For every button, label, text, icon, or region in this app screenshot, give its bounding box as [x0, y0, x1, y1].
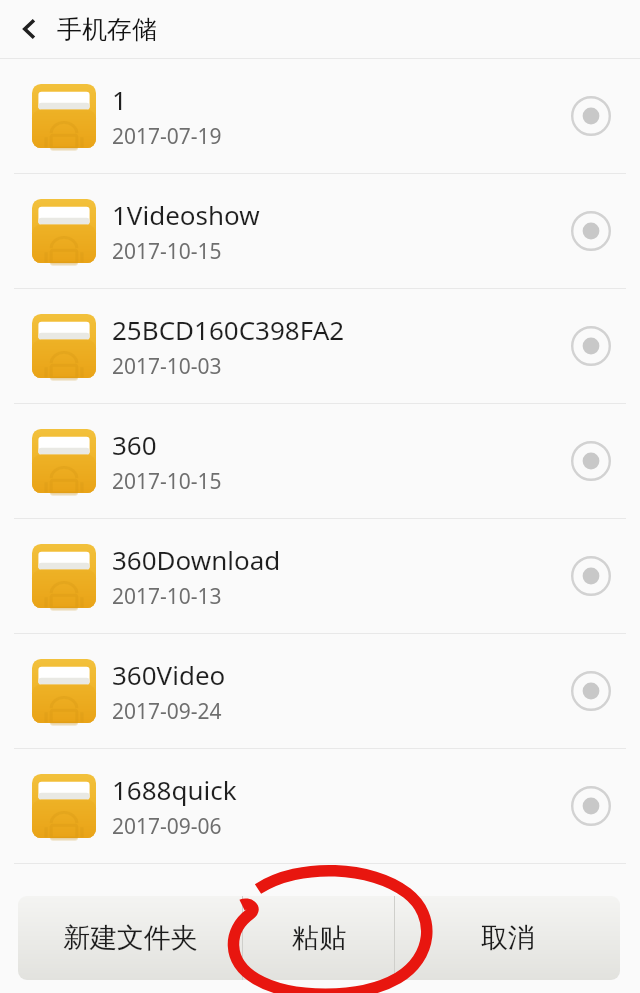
button[interactable]: 25BCD160C398FA2: [0, 289, 640, 403]
staticText: 360: [112, 427, 157, 462]
button[interactable]: Select 1: [554, 79, 628, 153]
staticText: 2017-10-15: [112, 467, 222, 496]
staticText: 2017-10-15: [112, 237, 222, 266]
button[interactable]: Select 360Download: [554, 539, 628, 613]
staticText: 25BCD160C398FA2: [112, 312, 345, 347]
staticText: 2017-10-13: [112, 582, 222, 611]
staticText: 新建文件夹: [63, 921, 198, 955]
button[interactable]: 360Video: [0, 634, 640, 748]
button[interactable]: 新建文件夹: [18, 896, 242, 980]
button[interactable]: 1: [0, 59, 640, 173]
button[interactable]: Select 1688quick: [554, 769, 628, 843]
staticText: 360Download: [112, 542, 281, 577]
button[interactable]: 360Download: [0, 519, 640, 633]
button[interactable]: Select 1Videoshow: [554, 194, 628, 268]
staticText: 1688quick: [112, 772, 237, 807]
staticText: 粘贴: [292, 921, 346, 955]
button[interactable]: 粘贴: [243, 896, 394, 980]
staticText: 2017-07-19: [112, 122, 222, 151]
button[interactable]: Select 25BCD160C398FA2: [554, 309, 628, 383]
staticText: 1: [112, 82, 127, 117]
staticText: 2017-09-24: [112, 697, 222, 726]
staticText: 手机存储: [57, 14, 157, 45]
button[interactable]: 取消: [395, 896, 620, 980]
button[interactable]: 360: [0, 404, 640, 518]
staticText: 2017-10-03: [112, 352, 222, 381]
button[interactable]: Back: [8, 7, 52, 51]
button[interactable]: Select 360Video: [554, 654, 628, 728]
staticText: 悟空问答: [546, 959, 630, 985]
button[interactable]: 1Videoshow: [0, 174, 640, 288]
button[interactable]: 1688quick: [0, 749, 640, 863]
staticText: 1Videoshow: [112, 197, 260, 232]
staticText: 360Video: [112, 657, 226, 692]
staticText: 2017-09-06: [112, 812, 222, 841]
button[interactable]: Select 360: [554, 424, 628, 498]
staticText: 取消: [481, 921, 535, 955]
